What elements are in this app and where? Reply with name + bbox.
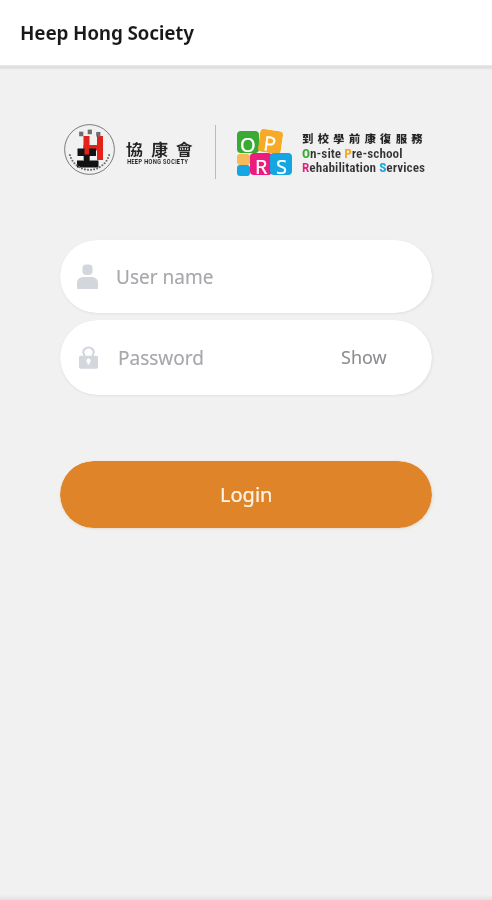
staticText: HEEP HONG SOCIETY [127,158,189,166]
staticText: On-site Pre-school [302,146,403,162]
staticText: S [276,153,287,175]
staticText: Rehabilitation Services [302,160,426,176]
staticText: 到校學前康復服務 [302,130,427,147]
button[interactable]: User name [60,240,432,313]
staticText: 協康會 [126,136,201,161]
staticText: R [255,153,268,175]
staticText: User name [116,264,214,290]
staticText: Show [341,345,387,370]
button[interactable]: Password [60,320,432,395]
staticText: O [240,131,256,153]
button[interactable]: Login [60,461,432,528]
button[interactable]: Show [321,331,432,384]
staticText: Login [220,481,273,508]
staticText: P [262,129,279,154]
staticText: Heep Hong Society [20,20,194,46]
staticText: Password [118,345,204,371]
